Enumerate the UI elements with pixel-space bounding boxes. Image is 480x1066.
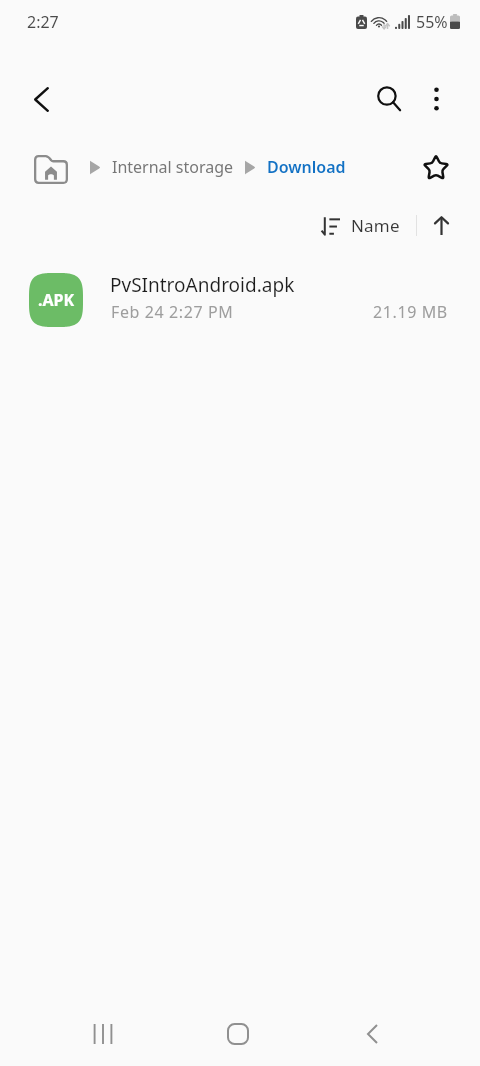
staticText: PvSIntroAndroid.apk [110, 272, 295, 298]
button[interactable]: .APK [0, 263, 480, 335]
button[interactable]: Internal storage [112, 148, 234, 186]
button[interactable]: Back [17, 75, 65, 123]
button[interactable]: More options [414, 77, 458, 121]
staticText: Feb 24 2:27 PM [111, 301, 234, 323]
button[interactable]: Sort order ascending [422, 206, 460, 244]
button[interactable]: Internal storage root [34, 153, 68, 185]
button[interactable]: Search [365, 75, 413, 123]
button[interactable]: Name [316, 208, 405, 243]
staticText: 55% [416, 11, 448, 33]
staticText: 21.19 MB [373, 301, 448, 323]
staticText: Download [267, 156, 346, 178]
staticText: Internal storage [112, 156, 234, 178]
staticText: Name [351, 214, 400, 237]
staticText: 2:27 [27, 11, 59, 33]
button[interactable]: Add to favourites [414, 145, 458, 189]
staticText: .APK [38, 289, 75, 311]
button[interactable]: Back [349, 1011, 395, 1057]
button[interactable]: Download [267, 148, 346, 186]
button[interactable]: Recent apps [80, 1011, 126, 1057]
button[interactable]: Home [215, 1011, 261, 1057]
